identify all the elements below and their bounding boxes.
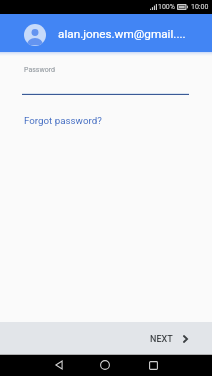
button[interactable]: Back (49, 355, 69, 375)
staticText: 10:00 (191, 3, 209, 11)
button[interactable]: Home (95, 355, 115, 375)
staticText: 100% (158, 3, 175, 11)
staticText: Password (24, 66, 55, 74)
button[interactable]: Forgot password? (0, 115, 110, 126)
staticText: Forgot password? (24, 115, 102, 126)
staticText: NEXT (150, 334, 173, 345)
staticText: alan.jones.wm@gmail.... (58, 27, 186, 41)
button[interactable]: NEXT (136, 325, 212, 352)
button[interactable]: Recent apps (143, 355, 163, 375)
